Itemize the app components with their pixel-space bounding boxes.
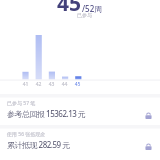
staticText: 42 [32,81,45,88]
staticText: /52周 [82,3,103,14]
staticText: 43 [45,81,58,88]
staticText: 参考总回报 15362.13 元 [7,108,86,119]
button[interactable]: Locked [144,111,153,120]
staticText: 使用 56 张抵现金 [7,131,46,138]
button[interactable]: 使用 56 张抵现金 [0,131,160,153]
staticText: 41 [19,81,32,88]
staticText: 44 [58,81,71,88]
staticText: 累计抵现 282.59 元 [7,139,70,150]
staticText: 45 [71,81,84,88]
staticText: 45 [57,0,82,18]
button[interactable]: 已参与 57 笔 [0,100,160,122]
staticText: 已参与 57 笔 [7,100,36,107]
staticText: 已参与 [77,12,92,18]
button[interactable]: Locked [144,142,153,151]
